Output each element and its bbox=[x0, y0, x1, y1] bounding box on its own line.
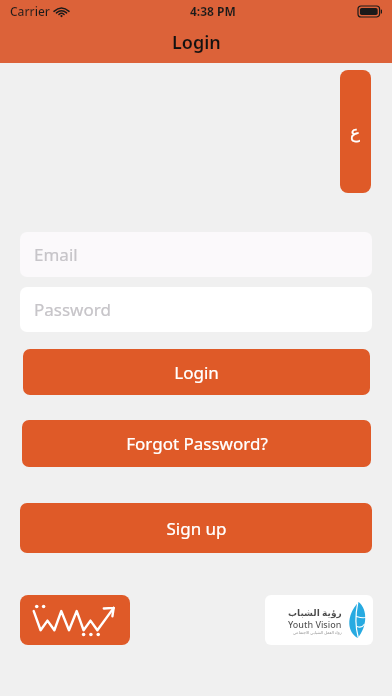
staticText: ع bbox=[350, 122, 361, 142]
staticText: Login bbox=[172, 30, 221, 55]
button[interactable]: Email bbox=[20, 232, 372, 277]
button[interactable]: Forgot Password? bbox=[22, 420, 371, 467]
staticText: Password bbox=[34, 298, 111, 321]
button[interactable]: Youth Vision bbox=[265, 595, 373, 645]
button[interactable]: Switch language to Arabic bbox=[340, 70, 371, 193]
staticText: Forgot Password? bbox=[126, 432, 268, 455]
button[interactable]: Login bbox=[23, 349, 370, 395]
button[interactable]: Password bbox=[20, 287, 372, 332]
staticText: رواد العمل الشبابي الاجتماعي bbox=[293, 630, 342, 635]
staticText: Youth Vision bbox=[288, 618, 342, 630]
staticText: رؤية الشباب bbox=[288, 606, 342, 618]
button[interactable]: Sign up bbox=[20, 503, 372, 553]
staticText: 4:38 PM bbox=[190, 3, 236, 19]
staticText: Sign up bbox=[166, 517, 227, 540]
staticText: Email bbox=[34, 243, 78, 266]
staticText: Carrier bbox=[10, 3, 50, 19]
staticText: Login bbox=[174, 361, 219, 384]
button[interactable]: App logo bbox=[20, 595, 130, 645]
